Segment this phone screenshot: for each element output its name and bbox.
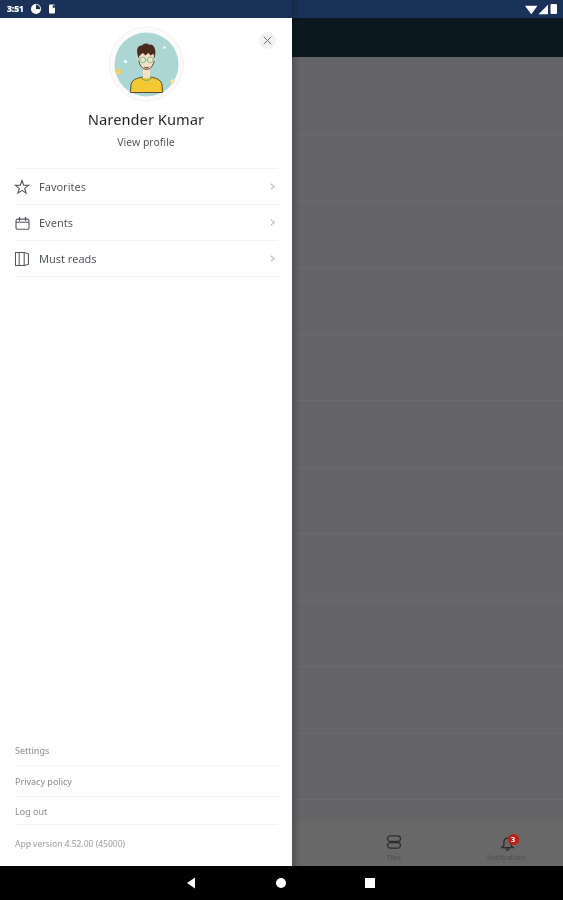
button[interactable]: Favorites [0, 169, 292, 204]
staticText: Narender Kumar [0, 109, 292, 129]
button[interactable]: Settings [0, 734, 292, 765]
staticText: Favorites [39, 179, 86, 194]
staticText: Settings [15, 744, 50, 756]
button[interactable]: View profile [0, 135, 292, 149]
staticText: Events [39, 215, 73, 230]
button[interactable]: Feed [224, 822, 337, 866]
staticText: Must reads [39, 251, 97, 266]
button[interactable]: 3 [450, 822, 563, 866]
button[interactable]: Privacy policy [0, 766, 292, 796]
staticText: Privacy policy [15, 775, 72, 787]
button[interactable]: Search [112, 822, 224, 866]
button[interactable]: Must reads [0, 241, 292, 276]
staticText: 3:51 [7, 3, 24, 15]
button[interactable]: Events [0, 205, 292, 240]
button[interactable]: Home [0, 822, 112, 866]
button[interactable]: Log out [0, 797, 292, 824]
button[interactable]: Tiles [337, 822, 450, 866]
staticText: Log out [15, 805, 48, 817]
staticText: App version 4.52.00 (45000) [15, 838, 126, 850]
button[interactable]: Close [259, 32, 276, 49]
staticText: Tiles [387, 853, 401, 862]
staticText: 3 [511, 835, 516, 845]
staticText: Notifications [487, 853, 526, 862]
